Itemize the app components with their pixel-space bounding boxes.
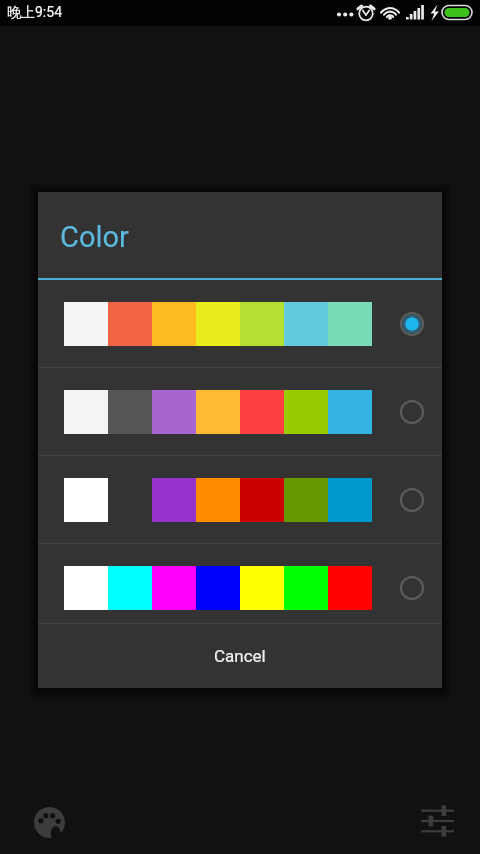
staticText: 晚上9:54 — [7, 4, 62, 22]
button[interactable]: Cancel — [38, 624, 442, 687]
button[interactable]: Tune — [417, 795, 457, 835]
button[interactable]: Palette — [29, 802, 69, 842]
button[interactable] — [38, 544, 442, 623]
staticText: Color — [60, 220, 129, 254]
button[interactable] — [38, 280, 442, 367]
button[interactable] — [38, 368, 442, 455]
staticText: Cancel — [214, 646, 266, 666]
button[interactable] — [38, 456, 442, 543]
